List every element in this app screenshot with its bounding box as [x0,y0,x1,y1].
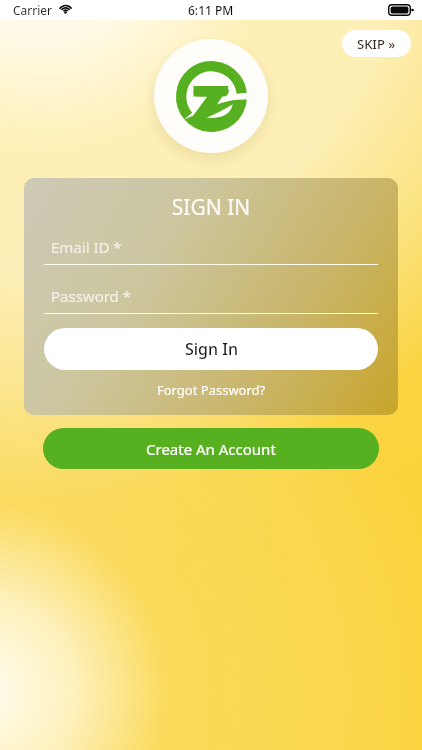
button[interactable]: Create An Account [43,428,379,469]
staticText: 6:11 PM [188,2,234,18]
staticText: Sign In [185,338,238,360]
staticText: SIGN IN [24,193,398,222]
button[interactable]: Forgot Password? [151,379,272,401]
other: App logo [176,61,247,132]
button[interactable]: SKIP » [342,30,411,57]
button[interactable]: Sign In [44,328,378,370]
staticText: Password * [51,286,132,306]
staticText: SKIP » [357,35,396,53]
staticText: Carrier [13,2,53,18]
staticText: Create An Account [146,439,276,459]
staticText: Email ID * [51,237,122,257]
